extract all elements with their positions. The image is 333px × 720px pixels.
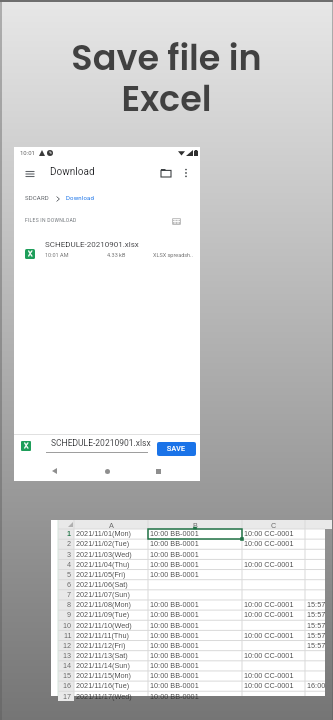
staticText: SDCARD <box>25 194 49 201</box>
button[interactable]: Switch to grid view <box>168 212 186 230</box>
staticText: 2021/11/12(Fri) <box>76 641 126 649</box>
staticText: 10:00 CC-0001 <box>244 651 294 659</box>
staticText: 11 <box>64 631 72 639</box>
staticText: 10:01 AM <box>45 252 69 258</box>
staticText: 10:00 CC-0001 <box>244 681 294 689</box>
staticText: 9 <box>67 610 72 618</box>
button[interactable]: SDCARD <box>25 194 49 201</box>
staticText: 12 <box>63 641 72 649</box>
staticText: 10:00 BB-0001 <box>150 610 199 618</box>
staticText: B <box>193 521 198 529</box>
staticText: 2021/11/06(Sat) <box>76 580 128 588</box>
staticText: 10:01 <box>20 149 35 156</box>
staticText: 4.33 kB <box>107 252 126 258</box>
staticText: 13 <box>63 651 72 659</box>
staticText: 2021/11/17(Wed) <box>76 692 132 700</box>
staticText: 2021/11/03(Wed) <box>76 550 132 558</box>
staticText: SCHEDULE-20210901.xlsx <box>51 438 151 448</box>
staticText: 15:57 <box>307 631 326 639</box>
button[interactable]: Create new folder <box>157 164 175 182</box>
staticText: 15:57 <box>307 600 326 608</box>
staticText: Save file in Excel <box>0 33 333 123</box>
staticText: 10:00 BB-0001 <box>150 550 199 558</box>
staticText: 10:00 BB-0001 <box>150 641 199 649</box>
staticText: 16:00 <box>307 681 326 689</box>
staticText: 14 <box>63 661 72 669</box>
staticText: 2021/11/01(Mon) <box>76 529 132 537</box>
staticText: 15:57 <box>307 621 326 629</box>
staticText: 4 <box>67 560 72 568</box>
staticText: Download <box>50 166 95 178</box>
staticText: X <box>28 250 33 258</box>
staticText: 2021/11/04(Thu) <box>76 560 130 568</box>
staticText: 10:00 CC-0001 <box>244 631 294 639</box>
staticText: 2021/11/05(Fri) <box>76 570 126 578</box>
staticText: SAVE <box>167 445 186 453</box>
staticText: A <box>109 521 114 529</box>
staticText: Download <box>66 194 94 201</box>
staticText: 10:00 BB-0001 <box>150 621 199 629</box>
staticText: 15:57 <box>307 610 326 618</box>
staticText: 10:00 BB-0001 <box>150 692 199 700</box>
staticText: 2021/11/11(Thu) <box>76 631 129 639</box>
staticText: 10:00 CC-0001 <box>244 671 294 679</box>
staticText: 5 <box>67 570 72 578</box>
staticText: FILES IN DOWNLOAD <box>25 217 77 223</box>
staticText: 2021/11/15(Mon) <box>76 671 132 679</box>
staticText: 10:00 CC-0001 <box>244 600 294 608</box>
staticText: 16 <box>63 681 72 689</box>
button[interactable]: Home <box>98 462 116 480</box>
staticText: 10:00 BB-0001 <box>150 681 199 689</box>
button[interactable]: Open navigation drawer <box>20 165 40 185</box>
staticText: 17 <box>63 692 72 700</box>
button[interactable]: X <box>14 237 200 267</box>
staticText: 2021/11/16(Tue) <box>76 681 130 689</box>
staticText: XLSX spreadsh.. <box>153 252 194 258</box>
staticText: 10:00 BB-0001 <box>150 600 199 608</box>
staticText: 2021/11/08(Mon) <box>76 600 132 608</box>
staticText: SCHEDULE-20210901.xlsx <box>45 240 139 249</box>
staticText: 10:00 CC-0001 <box>244 529 294 537</box>
staticText: 10:00 BB-0001 <box>150 651 199 659</box>
staticText: 8 <box>67 600 72 608</box>
button[interactable]: More options <box>177 164 195 182</box>
staticText: 2021/11/07(Sun) <box>76 590 130 598</box>
staticText: 2021/11/10(Wed) <box>76 621 132 629</box>
staticText: 10:00 BB-0001 <box>150 570 199 578</box>
staticText: 10:00 BB-0001 <box>150 661 199 669</box>
staticText: 10:00 CC-0001 <box>244 539 294 547</box>
staticText: 15:57 <box>307 641 326 649</box>
staticText: C <box>271 521 277 529</box>
staticText: 7 <box>67 590 72 598</box>
button[interactable]: Download <box>66 194 94 201</box>
staticText: 2021/11/13(Sat) <box>76 651 128 659</box>
staticText: 10:00 BB-0001 <box>150 539 199 547</box>
staticText: 10:00 BB-0001 <box>150 560 199 568</box>
button[interactable]: Back <box>45 462 63 480</box>
staticText: 2021/11/14(Sun) <box>76 661 130 669</box>
staticText: 2021/11/02(Tue) <box>76 539 130 547</box>
button[interactable]: SAVE <box>157 442 196 456</box>
staticText: 10:00 CC-0001 <box>244 560 294 568</box>
staticText: 10 <box>63 621 72 629</box>
staticText: 10:00 BB-0001 <box>150 671 199 679</box>
staticText: 2 <box>67 539 72 547</box>
staticText: 10:00 BB-0001 <box>150 529 199 537</box>
button[interactable]: Recent apps <box>149 462 167 480</box>
staticText: X <box>24 442 29 450</box>
staticText: 1 <box>67 529 72 537</box>
staticText: 15 <box>63 671 72 679</box>
staticText: 3 <box>67 550 72 558</box>
staticText: 2021/11/09(Tue) <box>76 610 130 618</box>
staticText: 10:00 BB-0001 <box>150 631 199 639</box>
staticText: 10:00 CC-0001 <box>244 610 294 618</box>
staticText: 6 <box>67 580 72 588</box>
